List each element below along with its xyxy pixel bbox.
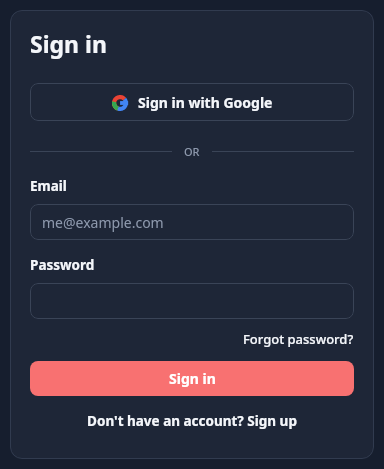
button[interactable]: Forgot password? <box>243 330 354 348</box>
button[interactable]: Don't have an account? Sign up <box>30 412 354 430</box>
button[interactable] <box>30 283 354 319</box>
staticText: Email <box>30 177 67 195</box>
staticText: Forgot password? <box>243 330 354 348</box>
staticText: Sign in <box>30 28 107 59</box>
button[interactable]: Sign in with Google <box>30 83 354 121</box>
staticText: Sign in with Google <box>138 93 273 112</box>
button[interactable]: me@example.com <box>30 204 354 240</box>
staticText: me@example.com <box>42 213 164 232</box>
button[interactable]: Sign in <box>30 361 354 396</box>
staticText: Sign in <box>169 369 216 388</box>
staticText: Don't have an account? Sign up <box>87 412 297 430</box>
staticText: OR <box>184 144 200 159</box>
staticText: Password <box>30 256 95 274</box>
